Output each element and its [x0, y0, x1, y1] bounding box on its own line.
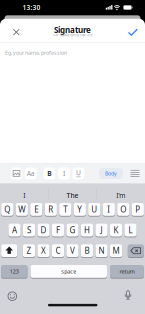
- staticText: H: [84, 225, 90, 235]
- staticText: X: [41, 245, 46, 256]
- staticText: U: [76, 168, 81, 177]
- button[interactable]: M: [110, 244, 122, 257]
- staticText: 13:30: [22, 3, 40, 12]
- button[interactable]: P: [132, 203, 144, 216]
- staticText: E: [34, 204, 38, 215]
- staticText: luke.skywalker@rocketmail.com: [53, 33, 92, 37]
- staticText: D: [40, 225, 46, 235]
- staticText: T: [63, 204, 67, 215]
- button[interactable]: S: [23, 224, 35, 236]
- staticText: B: [84, 245, 89, 256]
- staticText: B: [47, 169, 51, 178]
- button[interactable]: W: [16, 203, 28, 216]
- button[interactable]: The: [50, 189, 94, 202]
- button[interactable]: [12, 170, 20, 177]
- staticText: A: [12, 225, 17, 235]
- staticText: return: [119, 268, 134, 275]
- button[interactable]: Q: [1, 203, 13, 216]
- button[interactable]: F: [52, 224, 64, 236]
- staticText: K: [113, 225, 118, 235]
- staticText: U: [91, 204, 97, 215]
- button[interactable]: I'm: [99, 189, 143, 202]
- button[interactable]: 123: [1, 265, 27, 278]
- button[interactable]: H: [81, 224, 93, 236]
- button[interactable]: J: [95, 224, 108, 236]
- staticText: L: [128, 225, 132, 235]
- staticText: I'm: [116, 191, 125, 200]
- button[interactable]: [127, 27, 139, 37]
- button[interactable]: A: [8, 224, 21, 236]
- staticText: Body: [105, 170, 117, 177]
- staticText: I: [63, 169, 65, 178]
- button[interactable]: N: [95, 244, 108, 257]
- button[interactable]: B: [81, 244, 93, 257]
- staticText: Q: [4, 204, 10, 215]
- button[interactable]: Y: [74, 203, 86, 216]
- staticText: O: [120, 204, 126, 215]
- staticText: Signature: [54, 25, 91, 35]
- button[interactable]: K: [110, 224, 122, 236]
- button[interactable]: D: [37, 224, 50, 236]
- button[interactable]: [128, 244, 144, 257]
- button[interactable]: U: [88, 203, 100, 216]
- button[interactable]: [123, 290, 132, 301]
- staticText: space: [61, 268, 76, 275]
- button[interactable]: Body: [99, 168, 123, 179]
- staticText: W: [18, 204, 25, 215]
- staticText: C: [55, 245, 60, 256]
- staticText: J: [100, 225, 102, 235]
- button[interactable]: return: [110, 265, 144, 278]
- button[interactable]: X: [37, 244, 50, 257]
- staticText: P: [135, 204, 140, 215]
- staticText: F: [56, 225, 60, 235]
- button[interactable]: G: [66, 224, 79, 236]
- staticText: N: [98, 245, 104, 256]
- staticText: Y: [77, 204, 82, 215]
- staticText: R: [48, 204, 53, 215]
- button[interactable]: C: [52, 244, 64, 257]
- staticText: Z: [26, 245, 31, 256]
- button[interactable]: R: [45, 203, 57, 216]
- button[interactable]: U: [74, 169, 82, 178]
- button[interactable]: I: [2, 189, 46, 202]
- staticText: Eg. your name, profession: [5, 49, 67, 56]
- button[interactable]: L: [124, 224, 137, 236]
- button[interactable]: space: [30, 265, 107, 278]
- button[interactable]: E: [30, 203, 42, 216]
- staticText: M: [112, 245, 119, 256]
- button[interactable]: Z: [23, 244, 35, 257]
- staticText: G: [69, 225, 75, 235]
- staticText: 123: [10, 268, 19, 275]
- button[interactable]: V: [66, 244, 79, 257]
- staticText: I: [107, 204, 110, 215]
- staticText: S: [27, 225, 31, 235]
- button[interactable]: Aa: [26, 169, 36, 178]
- button[interactable]: [1, 244, 17, 257]
- staticText: Aa: [27, 169, 35, 178]
- button[interactable]: [130, 169, 139, 178]
- button[interactable]: B: [45, 169, 53, 178]
- button[interactable]: I: [61, 169, 67, 178]
- button[interactable]: I: [103, 203, 115, 216]
- button[interactable]: T: [59, 203, 71, 216]
- staticText: The: [66, 191, 78, 200]
- staticText: V: [70, 245, 75, 256]
- button[interactable]: [7, 291, 18, 302]
- staticText: I: [23, 191, 25, 200]
- button[interactable]: O: [117, 203, 129, 216]
- button[interactable]: [10, 26, 22, 38]
